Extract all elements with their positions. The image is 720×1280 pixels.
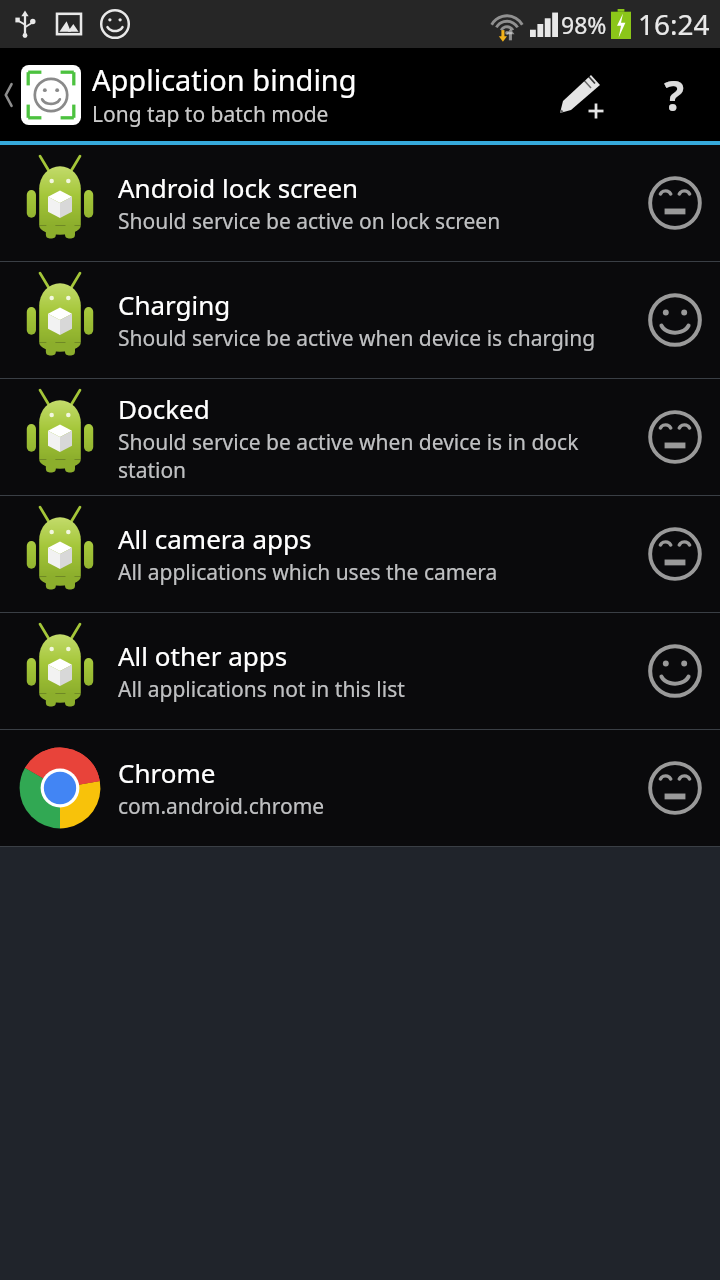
button[interactable]: Enabled, tap to change <box>644 640 706 702</box>
staticText: Should service be active when device is … <box>118 324 596 353</box>
staticText: 98% <box>561 9 607 40</box>
staticText: Should service be active when device is … <box>118 428 636 484</box>
button[interactable]: Enabled, tap to change <box>644 289 706 351</box>
staticText: ? <box>664 66 685 123</box>
staticText: Android lock screen <box>118 170 359 205</box>
staticText: All camera apps <box>118 521 312 556</box>
button[interactable]: Navigate up <box>0 48 82 141</box>
staticText: All applications not in this list <box>118 675 405 704</box>
staticText: Docked <box>118 391 210 426</box>
button[interactable]: All camera apps <box>0 496 720 612</box>
staticText: 16:24 <box>638 5 710 43</box>
button[interactable]: Disabled, tap to change <box>644 757 706 819</box>
button[interactable]: All other apps <box>0 613 720 729</box>
button[interactable]: Add binding <box>532 48 628 141</box>
button[interactable]: Disabled, tap to change <box>644 172 706 234</box>
button[interactable]: Android lock screen <box>0 145 720 261</box>
button[interactable]: Disabled, tap to change <box>644 406 706 468</box>
button[interactable]: Disabled, tap to change <box>644 523 706 585</box>
button[interactable]: Charging <box>0 262 720 378</box>
button[interactable]: Help <box>628 48 720 141</box>
staticText: All other apps <box>118 638 288 673</box>
staticText: com.android.chrome <box>118 792 325 821</box>
staticText: Should service be active on lock screen <box>118 207 501 236</box>
staticText: Charging <box>118 287 231 322</box>
staticText: Chrome <box>118 755 216 790</box>
staticText: Application binding <box>92 60 357 99</box>
button[interactable]: Docked <box>0 379 720 495</box>
staticText: All applications which uses the camera <box>118 558 498 587</box>
button[interactable]: Chrome <box>0 730 720 846</box>
staticText: Long tap to batch mode <box>92 100 329 129</box>
